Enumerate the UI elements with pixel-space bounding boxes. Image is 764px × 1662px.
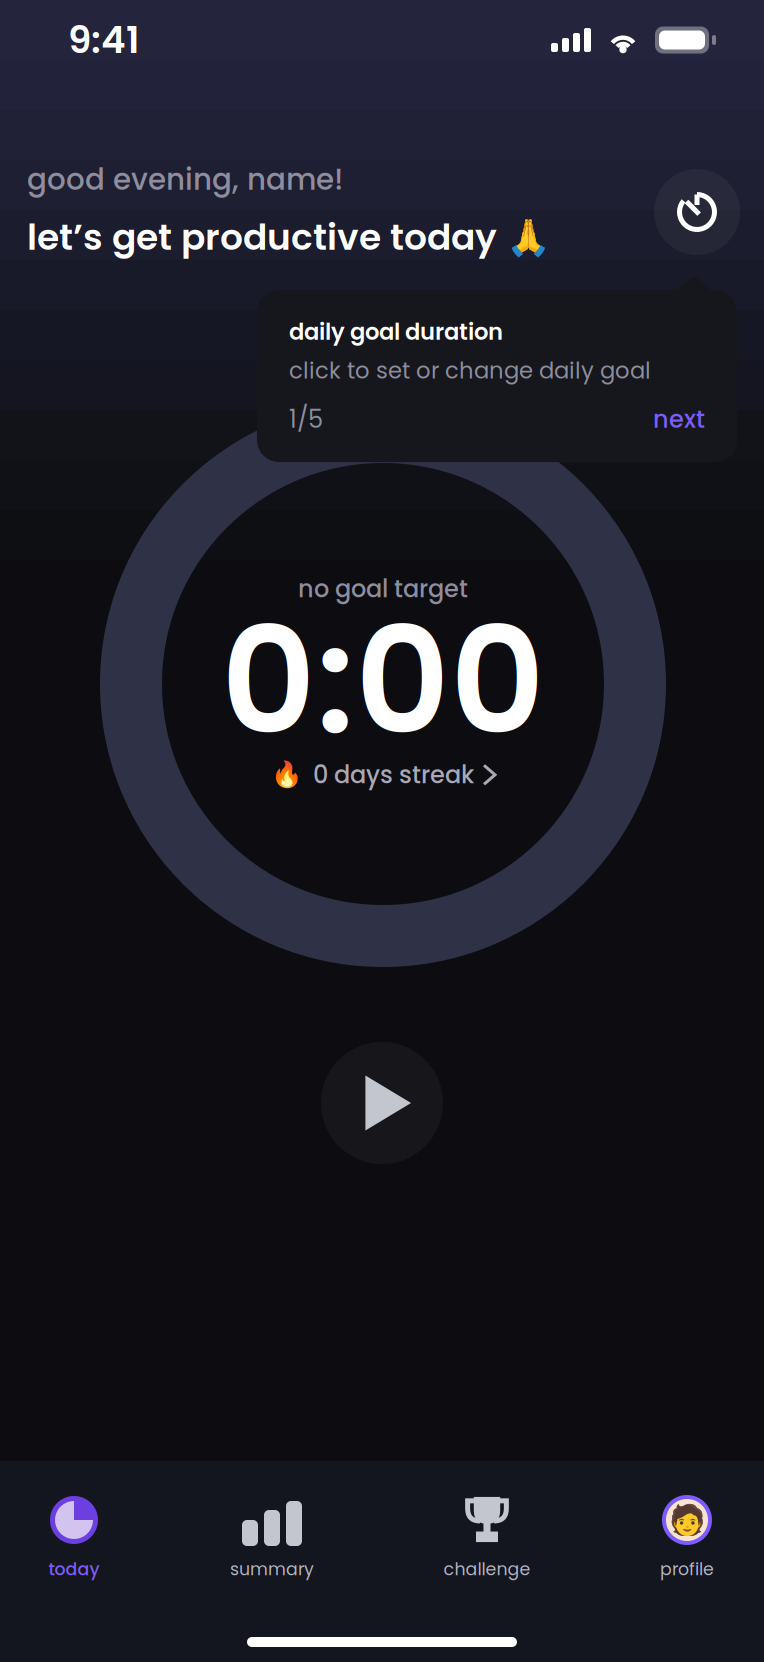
button[interactable]: 🔥	[271, 758, 495, 792]
staticText: 0 days streak	[313, 758, 474, 792]
button[interactable]: Start timer	[321, 1042, 443, 1164]
staticText: next	[653, 402, 705, 436]
staticText: 🧑	[668, 1503, 705, 1537]
button[interactable]: Set daily goal duration	[654, 169, 740, 255]
button[interactable]: Profile	[627, 1494, 747, 1581]
button[interactable]: Summary	[212, 1494, 332, 1581]
staticText: 1/5	[289, 402, 323, 436]
button[interactable]: next	[653, 402, 705, 436]
staticText: no goal target	[298, 572, 468, 606]
staticText: today	[48, 1557, 99, 1581]
button[interactable]: Today	[14, 1494, 134, 1581]
staticText: 🔥	[271, 760, 303, 790]
staticText: summary	[230, 1557, 314, 1581]
button[interactable]: Challenge	[427, 1494, 547, 1581]
staticText: 9:41	[68, 14, 140, 66]
staticText: let’s get productive today 🙏	[27, 212, 551, 262]
staticText: daily goal duration	[289, 316, 503, 348]
staticText: challenge	[443, 1557, 530, 1581]
staticText: 0:00	[221, 578, 545, 784]
staticText: click to set or change daily goal	[289, 355, 651, 386]
staticText: profile	[660, 1557, 714, 1581]
staticText: good evening, name!	[27, 159, 343, 200]
